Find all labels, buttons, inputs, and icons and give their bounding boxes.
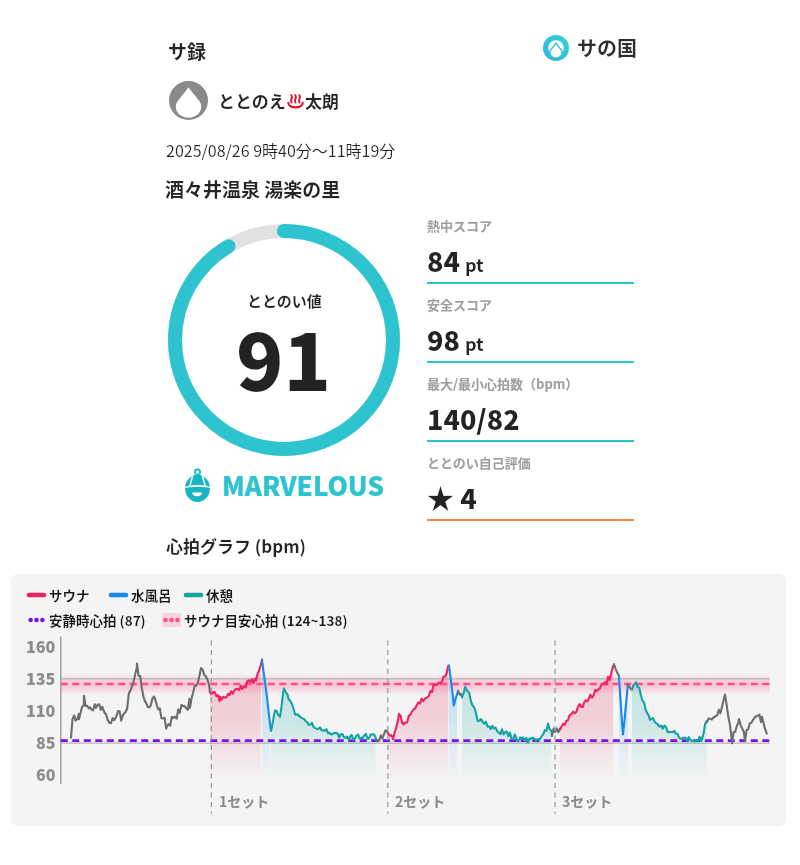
- staticText: 安全スコア: [427, 295, 493, 314]
- staticText: 1セット: [219, 791, 270, 811]
- staticText: ととのい自己評価: [427, 453, 531, 472]
- staticText: 太朗: [305, 88, 339, 113]
- button[interactable]: 安静時心拍 (87): [28, 610, 146, 630]
- staticText: 安静時心拍 (87): [49, 610, 146, 630]
- staticText: 98: [427, 320, 460, 359]
- staticText: サの国: [577, 33, 637, 62]
- staticText: 135: [26, 666, 56, 686]
- staticText: 休憩: [206, 585, 233, 605]
- staticText: 140/82: [427, 399, 520, 438]
- button[interactable]: ととのえ: [169, 81, 339, 120]
- staticText: サ録: [168, 37, 207, 65]
- button[interactable]: 水風呂: [110, 585, 172, 605]
- staticText: 84: [427, 241, 460, 280]
- staticText: 85: [36, 730, 56, 750]
- button[interactable]: サの国 logo: [543, 33, 637, 62]
- button[interactable]: サウナ目安心拍 (124~138): [163, 610, 348, 630]
- staticText: 熱中スコア: [427, 216, 493, 235]
- staticText: 160: [26, 634, 56, 654]
- staticText: 酒々井温泉 湯楽の里: [165, 175, 341, 203]
- staticText: 60: [36, 762, 56, 782]
- staticText: 心拍グラフ (bpm): [166, 533, 306, 558]
- staticText: MARVELOUS: [222, 466, 385, 504]
- button[interactable]: MARVELOUS: [182, 466, 385, 504]
- staticText: 2025/08/26 9時40分〜11時19分: [166, 138, 396, 161]
- staticText: 2セット: [395, 791, 446, 811]
- staticText: ★ 4: [427, 478, 477, 517]
- staticText: pt: [465, 330, 484, 356]
- staticText: 水風呂: [131, 585, 172, 605]
- button[interactable]: 安全スコア: [427, 295, 634, 374]
- staticText: サウナ目安心拍 (124~138): [184, 610, 348, 630]
- staticText: ととのえ: [218, 88, 286, 113]
- button[interactable]: サウナ: [28, 585, 90, 605]
- staticText: 91: [236, 301, 332, 414]
- staticText: 3セット: [562, 791, 613, 811]
- button[interactable]: 熱中スコア: [427, 216, 634, 295]
- staticText: 最大/最小心拍数（bpm）: [427, 374, 579, 393]
- staticText: ととのい値: [247, 290, 322, 312]
- button[interactable]: 最大/最小心拍数（bpm）: [427, 374, 634, 453]
- staticText: 110: [26, 698, 56, 718]
- staticText: pt: [465, 251, 484, 277]
- button[interactable]: 休憩: [185, 585, 233, 605]
- staticText: サウナ: [49, 585, 90, 605]
- button[interactable]: ととのい値: [168, 224, 400, 456]
- button[interactable]: ととのい自己評価: [427, 453, 634, 532]
